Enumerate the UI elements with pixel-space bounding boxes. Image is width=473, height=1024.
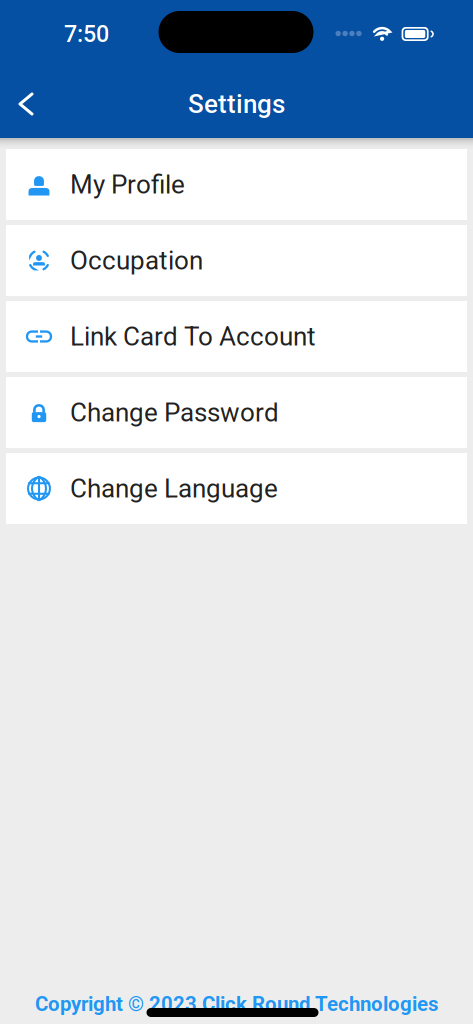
staticText: Copyright © 2023 Click Round Technologie… [35, 992, 438, 1016]
button[interactable]: My Profile [6, 149, 467, 220]
staticText: Change Language [70, 473, 278, 504]
button[interactable]: Link Card To Account [6, 301, 467, 372]
button[interactable]: Occupation [6, 225, 467, 296]
staticText: Change Password [70, 397, 279, 428]
button[interactable]: Change Password [6, 377, 467, 448]
button[interactable]: Change Language [6, 453, 467, 524]
staticText: Link Card To Account [70, 321, 316, 352]
staticText: 7:50 [64, 20, 109, 48]
staticText: My Profile [70, 169, 185, 200]
button[interactable]: Back [0, 76, 52, 132]
staticText: Settings [188, 89, 285, 119]
staticText: Occupation [70, 245, 203, 276]
